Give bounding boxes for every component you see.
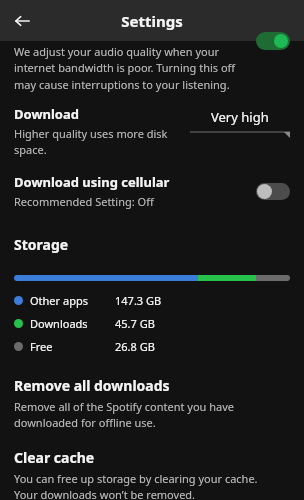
staticText: Free xyxy=(30,339,53,354)
staticText: 45.7 GB xyxy=(115,316,155,331)
button[interactable]: Clear cache xyxy=(0,448,304,500)
staticText: Remove all of the Spotify content you ha… xyxy=(14,399,234,430)
staticText: We adjust your audio quality when your i… xyxy=(14,44,254,93)
staticText: Download using cellular xyxy=(14,173,170,191)
button[interactable]: Audio quality toggle xyxy=(256,32,290,50)
staticText: Other apps xyxy=(30,293,88,308)
staticText: Higher quality uses more disk space. xyxy=(14,126,168,157)
staticText: Settings xyxy=(121,11,183,31)
staticText: Remove all downloads xyxy=(14,376,170,395)
staticText: 26.8 GB xyxy=(115,339,155,354)
staticText: Download xyxy=(14,105,79,123)
staticText: Storage xyxy=(14,235,69,254)
staticText: 147.3 GB xyxy=(115,293,162,308)
button[interactable]: Download using cellular xyxy=(0,173,304,209)
button[interactable]: Download xyxy=(0,103,304,159)
other: Download using cellular toggle xyxy=(256,183,290,200)
button[interactable]: Back xyxy=(6,5,38,37)
staticText: Very high xyxy=(211,108,269,126)
staticText: Recommended Setting: Off xyxy=(14,194,154,209)
staticText: Clear cache xyxy=(14,448,95,467)
button[interactable]: Remove all downloads xyxy=(0,376,304,430)
staticText: Downloads xyxy=(30,316,88,331)
staticText: You can free up storage by clearing your… xyxy=(14,471,258,500)
